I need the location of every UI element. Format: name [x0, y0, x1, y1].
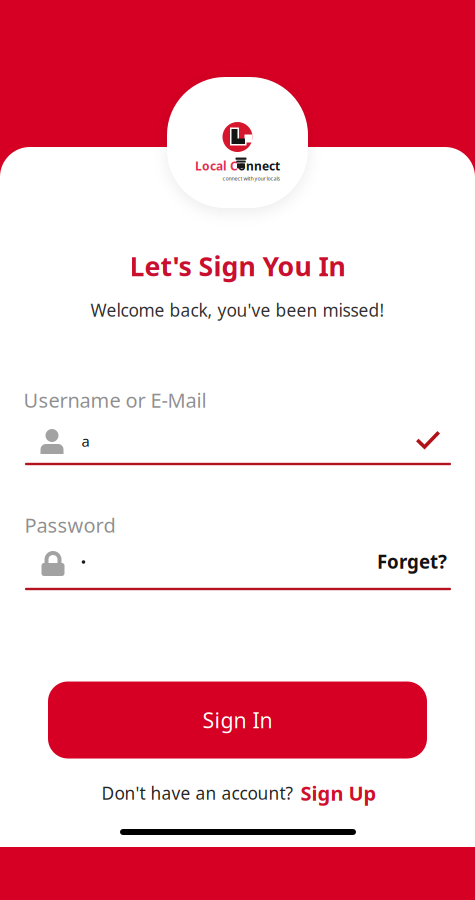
button[interactable]: Valid: [411, 425, 445, 455]
staticText: Welcome back, you've been missed!: [90, 298, 384, 321]
staticText: a: [81, 431, 89, 451]
staticText: Sign Up: [300, 780, 376, 806]
staticText: Let's Sign You In: [129, 248, 345, 284]
staticText: Local C: [195, 158, 238, 174]
staticText: Forget?: [377, 549, 447, 574]
staticText: Username or E-Mail: [23, 387, 206, 413]
staticText: onnect: [238, 158, 280, 174]
staticText: Password: [24, 512, 115, 538]
staticText: Don't have an account?: [101, 781, 293, 804]
staticText: Sign In: [202, 706, 272, 734]
button[interactable]: Sign In: [48, 681, 427, 758]
button[interactable]: Forget?: [373, 545, 451, 578]
staticText: connect with your locals: [222, 175, 280, 182]
button[interactable]: Don't have an account?: [101, 780, 376, 806]
